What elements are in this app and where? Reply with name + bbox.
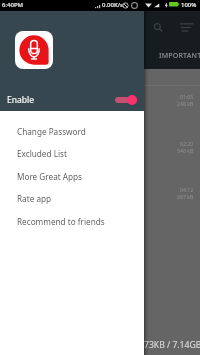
staticText: Recommend to friends [17, 216, 105, 227]
staticText: 546 kB [177, 147, 194, 154]
button[interactable]: Sort [177, 18, 195, 36]
button[interactable]: Rate app [0, 187, 144, 210]
button[interactable]: 02:20 [0, 131, 200, 177]
staticText: Change Password [17, 126, 86, 137]
staticText: Rate app [17, 193, 52, 204]
button[interactable]: 01:05 [0, 84, 200, 130]
button[interactable]: Recommend to friends [0, 210, 144, 233]
staticText: Excluded List [17, 148, 67, 159]
staticText: 6:40PM [2, 1, 24, 9]
staticText: Enable [7, 94, 34, 106]
staticText: 248 kB [177, 100, 194, 107]
button[interactable]: Search [150, 18, 168, 36]
staticText: 04:12 [180, 186, 194, 193]
staticText: 987 kB [177, 193, 194, 200]
staticText: More Great Apps [17, 171, 83, 182]
button[interactable]: More Great Apps [0, 165, 144, 188]
staticText: 100% [181, 1, 197, 9]
button[interactable]: Enable [0, 86, 144, 113]
button[interactable]: App icon [15, 31, 53, 69]
button[interactable]: Change Password [0, 120, 144, 143]
staticText: 02:20 [180, 140, 194, 147]
staticText: 01:05 [180, 93, 194, 100]
button[interactable]: 04:12 [0, 177, 200, 223]
staticText: 73KB / 7.14GB [144, 339, 200, 351]
staticText: IMPORTANT [159, 51, 200, 61]
button[interactable]: Excluded List [0, 142, 144, 165]
staticText: 0.00K/s [102, 1, 123, 9]
